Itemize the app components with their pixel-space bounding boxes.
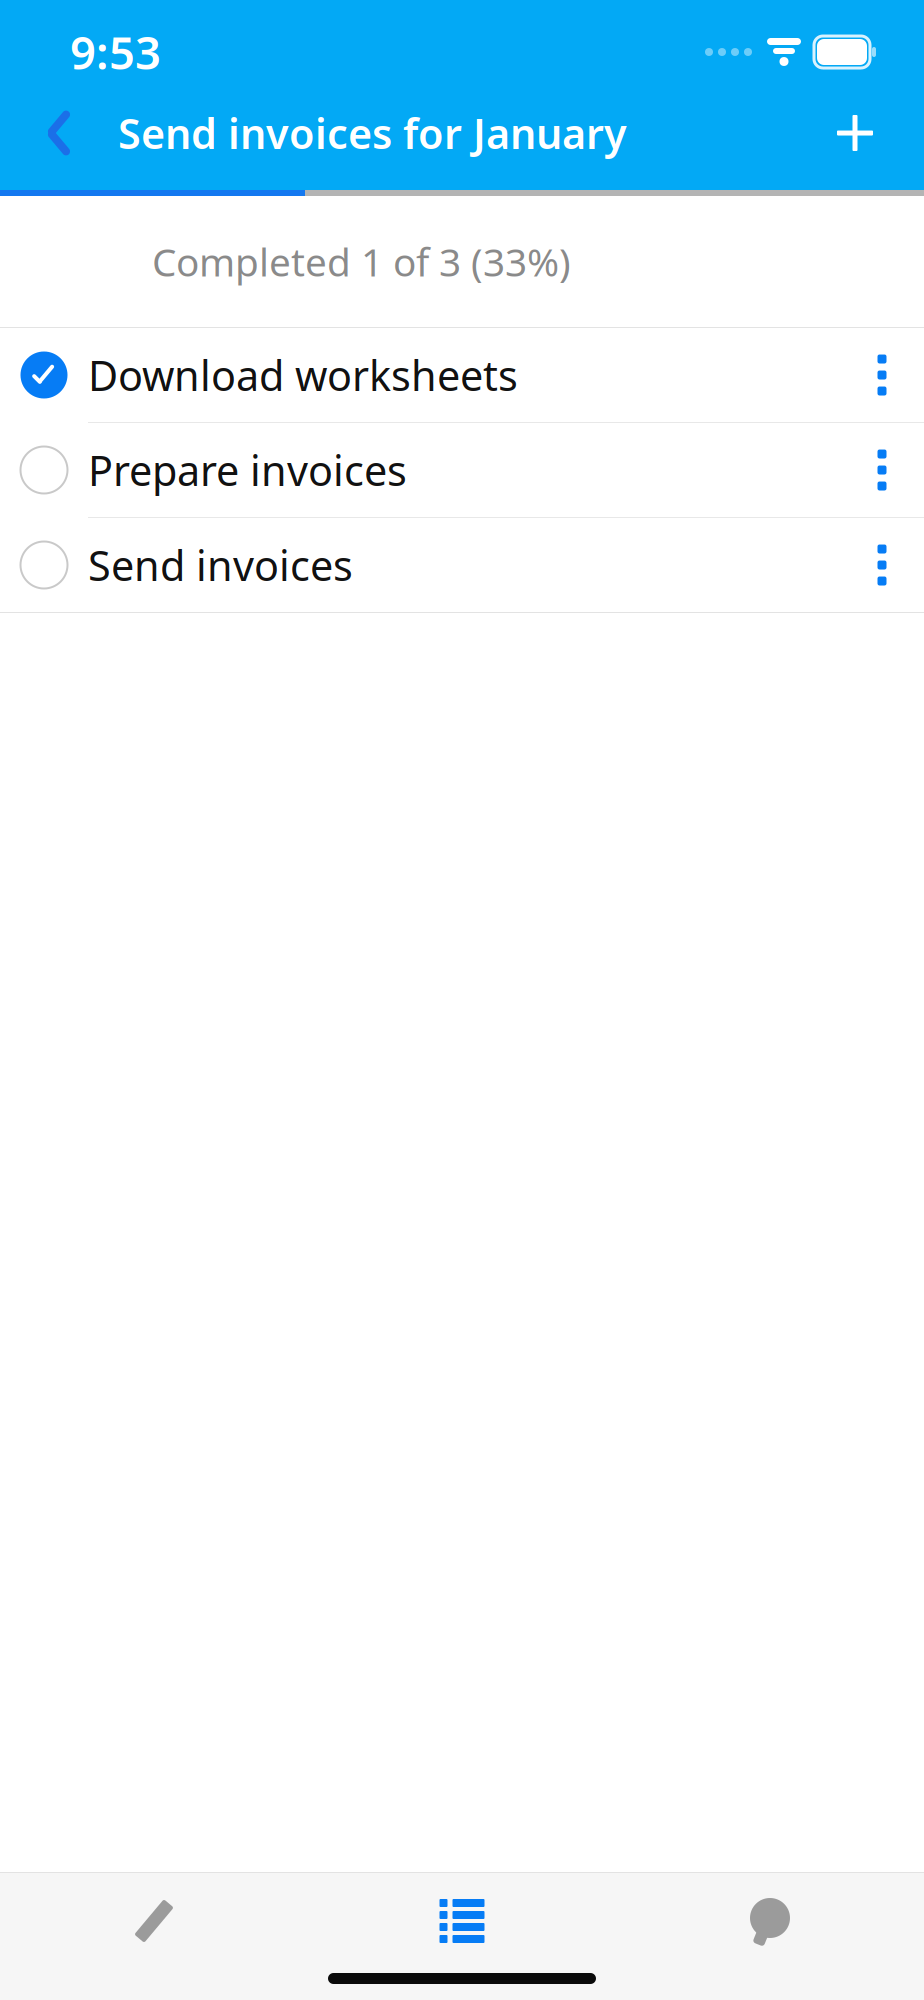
button[interactable]: More options xyxy=(840,328,924,422)
staticText: Send invoices for January xyxy=(118,106,627,160)
button[interactable]: Send invoices xyxy=(0,518,924,612)
button[interactable]: More options xyxy=(840,518,924,612)
button[interactable]: Notes xyxy=(0,1873,308,1969)
button[interactable]: Mark complete xyxy=(0,423,88,517)
button[interactable]: Back xyxy=(22,96,96,170)
button[interactable]: Download worksheets xyxy=(0,328,924,422)
staticText: Prepare invoices xyxy=(88,443,407,497)
button[interactable]: Tasks xyxy=(308,1873,616,1969)
button[interactable]: More options xyxy=(840,423,924,517)
staticText: Completed 1 of 3 (33%) xyxy=(152,236,571,287)
button[interactable]: Prepare invoices xyxy=(0,423,924,517)
staticText: 9:53 xyxy=(70,22,161,82)
button[interactable]: Mark complete xyxy=(0,518,88,612)
button[interactable]: Mark incomplete xyxy=(0,328,88,422)
button[interactable]: Add task xyxy=(818,96,892,170)
staticText: Send invoices xyxy=(88,538,353,592)
staticText: Download worksheets xyxy=(88,348,518,402)
button[interactable]: Messages xyxy=(616,1873,924,1969)
